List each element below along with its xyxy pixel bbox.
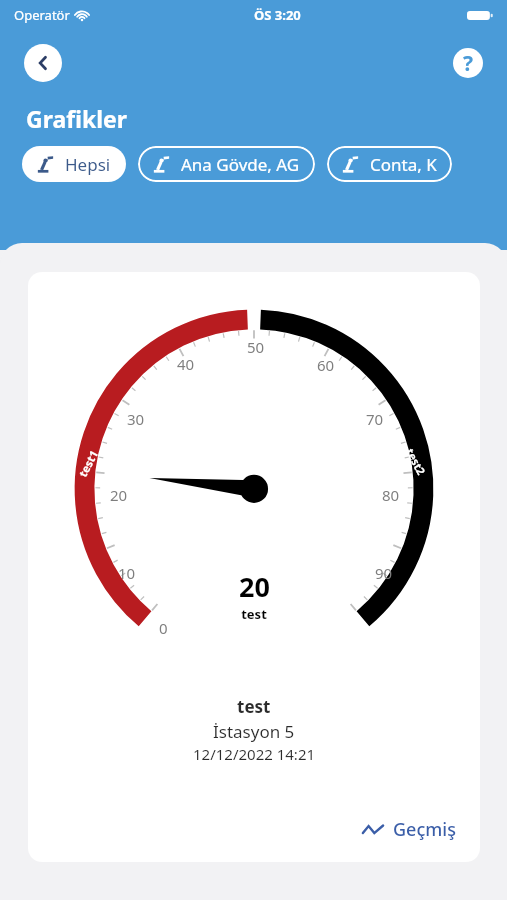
staticText: 12/12/2022 14:21	[193, 744, 316, 764]
button[interactable]: Back	[24, 44, 62, 82]
button[interactable]: Ana Gövde, AG	[138, 146, 315, 182]
staticText: Ana Gövde, AG	[181, 153, 300, 176]
staticText: Hepsi	[65, 153, 111, 176]
staticText: 80	[382, 485, 400, 505]
button[interactable]: Help	[453, 48, 483, 78]
staticText: 30	[127, 409, 145, 429]
staticText: 40	[177, 354, 195, 374]
button[interactable]: Geçmiş	[356, 811, 462, 848]
staticText: test1	[75, 448, 101, 479]
staticText: test2	[403, 446, 429, 477]
staticText: Geçmiş	[393, 817, 456, 842]
staticText: test	[241, 605, 267, 623]
staticText: 50	[247, 337, 265, 357]
staticText: İstasyon 5	[213, 720, 295, 743]
staticText: ÖS 3:20	[254, 6, 301, 24]
button[interactable]: Hepsi	[22, 146, 126, 182]
staticText: ?	[463, 49, 474, 78]
staticText: 0	[159, 618, 168, 638]
staticText: 20	[110, 485, 128, 505]
staticText: 20	[239, 568, 270, 605]
staticText: 60	[317, 355, 335, 375]
staticText: 10	[118, 563, 136, 583]
button[interactable]: Conta, K	[327, 146, 452, 182]
staticText: Conta, K	[370, 153, 437, 176]
staticText: 90	[375, 563, 393, 583]
staticText: 70	[366, 409, 384, 429]
staticText: Grafikler	[26, 103, 128, 134]
staticText: test	[237, 695, 271, 718]
staticText: Operatör	[14, 6, 70, 24]
